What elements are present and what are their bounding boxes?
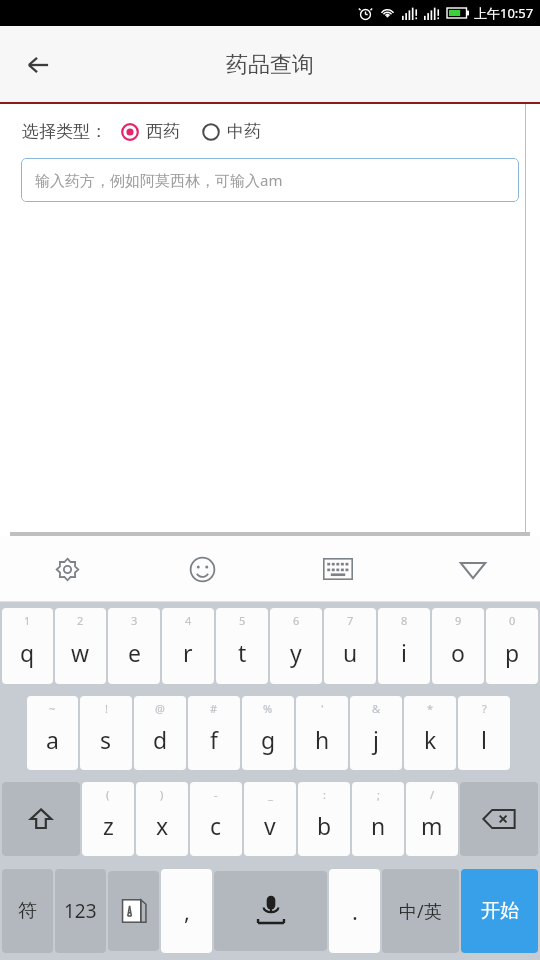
- staticText: -: [214, 787, 218, 802]
- button[interactable]: *: [404, 696, 456, 770]
- staticText: 输入药方，例如阿莫西林，可输入am: [35, 170, 283, 190]
- staticText: a: [46, 724, 59, 755]
- staticText: e: [128, 637, 141, 668]
- staticText: 7: [347, 613, 354, 628]
- button[interactable]: ,: [161, 869, 212, 953]
- button[interactable]: 开始: [461, 869, 538, 953]
- staticText: 中药: [227, 121, 261, 142]
- staticText: r: [183, 637, 193, 668]
- button[interactable]: Backspace: [460, 782, 538, 856]
- staticText: s: [100, 724, 112, 755]
- staticText: ': [321, 701, 324, 716]
- staticText: f: [210, 724, 218, 755]
- button[interactable]: !: [80, 696, 132, 770]
- staticText: 123: [64, 898, 97, 924]
- staticText: ~: [49, 701, 56, 716]
- staticText: h: [315, 724, 330, 755]
- staticText: k: [424, 724, 437, 755]
- staticText: ,: [184, 896, 190, 926]
- staticText: _: [268, 787, 273, 802]
- staticText: c: [210, 810, 222, 841]
- staticText: b: [317, 810, 332, 841]
- button[interactable]: ): [136, 782, 188, 856]
- button[interactable]: 6: [270, 608, 322, 684]
- button[interactable]: Input method: [108, 871, 159, 951]
- button[interactable]: 中药: [200, 121, 263, 142]
- button[interactable]: &: [350, 696, 402, 770]
- staticText: ;: [377, 787, 380, 802]
- staticText: 0: [509, 613, 516, 628]
- staticText: !: [105, 701, 108, 716]
- button[interactable]: #: [188, 696, 240, 770]
- staticText: 1: [24, 613, 31, 628]
- staticText: 上午10:57: [474, 4, 534, 22]
- staticText: x: [156, 810, 169, 841]
- staticText: d: [153, 724, 168, 755]
- button[interactable]: Shift: [2, 782, 80, 856]
- button[interactable]: ': [296, 696, 348, 770]
- staticText: p: [505, 637, 520, 668]
- staticText: t: [238, 637, 247, 668]
- staticText: 符: [18, 899, 37, 923]
- staticText: j: [373, 724, 379, 755]
- staticText: (: [106, 787, 110, 802]
- button[interactable]: ?: [458, 696, 510, 770]
- staticText: %: [263, 701, 273, 716]
- staticText: n: [371, 810, 386, 841]
- staticText: 药品查询: [226, 51, 314, 79]
- staticText: v: [264, 810, 276, 841]
- button[interactable]: @: [134, 696, 186, 770]
- staticText: :: [323, 787, 326, 802]
- button[interactable]: 0: [486, 608, 538, 684]
- button[interactable]: 1: [2, 608, 53, 684]
- button[interactable]: :: [298, 782, 350, 856]
- button[interactable]: 9: [432, 608, 484, 684]
- staticText: g: [261, 724, 276, 755]
- button[interactable]: 4: [162, 608, 214, 684]
- button[interactable]: 中/英: [382, 869, 459, 953]
- button[interactable]: 输入药方，例如阿莫西林，可输入am: [21, 158, 519, 202]
- button[interactable]: ~: [27, 696, 78, 770]
- button[interactable]: 西药: [119, 121, 182, 142]
- staticText: o: [451, 637, 465, 668]
- button[interactable]: (: [82, 782, 134, 856]
- button[interactable]: 5: [216, 608, 268, 684]
- staticText: y: [290, 637, 302, 668]
- staticText: m: [421, 810, 443, 841]
- button[interactable]: Hide keyboard: [405, 536, 540, 602]
- staticText: 3: [131, 613, 138, 628]
- button[interactable]: 123: [55, 869, 106, 953]
- staticText: u: [343, 637, 358, 668]
- staticText: &: [372, 701, 381, 716]
- staticText: ?: [482, 701, 487, 716]
- staticText: 选择类型：: [22, 121, 107, 142]
- staticText: 6: [293, 613, 300, 628]
- staticText: ): [160, 787, 164, 802]
- button[interactable]: 7: [324, 608, 376, 684]
- button[interactable]: ;: [352, 782, 404, 856]
- button[interactable]: Back: [12, 39, 64, 91]
- button[interactable]: %: [242, 696, 294, 770]
- staticText: 2: [77, 613, 84, 628]
- button[interactable]: 2: [55, 608, 106, 684]
- button[interactable]: Space: [214, 871, 327, 951]
- button[interactable]: 符: [2, 869, 53, 953]
- button[interactable]: .: [329, 869, 380, 953]
- staticText: q: [20, 637, 35, 668]
- button[interactable]: Settings: [0, 536, 135, 602]
- button[interactable]: -: [190, 782, 242, 856]
- button[interactable]: 3: [108, 608, 160, 684]
- staticText: *: [427, 701, 434, 716]
- button[interactable]: Emoji: [135, 536, 270, 602]
- staticText: i: [401, 637, 407, 668]
- staticText: 8: [401, 613, 408, 628]
- staticText: 5: [239, 613, 246, 628]
- staticText: /: [430, 787, 435, 802]
- button[interactable]: /: [406, 782, 458, 856]
- staticText: w: [71, 637, 90, 668]
- button[interactable]: 8: [378, 608, 430, 684]
- button[interactable]: Keyboard layout: [270, 536, 405, 602]
- staticText: 中/英: [399, 899, 442, 924]
- button[interactable]: _: [244, 782, 296, 856]
- staticText: 西药: [146, 121, 180, 142]
